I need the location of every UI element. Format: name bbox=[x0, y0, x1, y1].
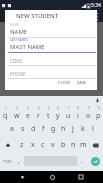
button[interactable]: l bbox=[88, 121, 98, 137]
staticText: e bbox=[26, 111, 30, 121]
button[interactable]: f bbox=[38, 121, 48, 137]
button[interactable]: 6 bbox=[53, 105, 63, 121]
button[interactable]: CODE bbox=[8, 53, 96, 66]
button[interactable]: 8 bbox=[73, 105, 83, 121]
staticText: s bbox=[21, 124, 25, 134]
button[interactable]: 9 bbox=[83, 105, 93, 121]
staticText: 9 bbox=[88, 106, 90, 110]
staticText: 2 bbox=[16, 106, 18, 110]
staticText: d bbox=[31, 124, 36, 134]
staticText: t bbox=[47, 111, 50, 121]
button[interactable]: c bbox=[38, 137, 48, 153]
staticText: h bbox=[61, 124, 66, 134]
staticText: f bbox=[42, 124, 45, 134]
button[interactable]: Hide keyboard bbox=[94, 97, 101, 104]
staticText: a bbox=[10, 124, 14, 134]
staticText: k bbox=[81, 124, 85, 134]
staticText: 8 bbox=[77, 106, 79, 110]
staticText: 1 bbox=[5, 106, 7, 110]
staticText: 4 bbox=[38, 106, 40, 110]
button[interactable]: . bbox=[77, 153, 87, 169]
staticText: i bbox=[77, 111, 79, 121]
staticText: , bbox=[18, 156, 20, 166]
button[interactable]: More options bbox=[94, 11, 101, 21]
staticText: NEW STUDENT bbox=[16, 12, 59, 20]
staticText: . bbox=[81, 156, 83, 166]
button[interactable]: Back bbox=[17, 172, 27, 182]
button[interactable]: 0 bbox=[93, 105, 103, 121]
staticText: 6 bbox=[57, 106, 59, 110]
staticText: 0 bbox=[98, 106, 100, 110]
staticText: j bbox=[72, 124, 74, 134]
button[interactable]: CLOSE bbox=[57, 79, 72, 86]
staticText: SAVE bbox=[77, 80, 87, 85]
staticText: PHONE bbox=[10, 71, 26, 77]
staticText: q bbox=[3, 111, 8, 121]
button[interactable]: Shift bbox=[0, 137, 16, 153]
staticText: LAST NAMES bbox=[10, 38, 28, 42]
staticText: g bbox=[51, 124, 56, 134]
button[interactable]: 2 bbox=[11, 105, 22, 121]
staticText: x bbox=[31, 140, 35, 150]
button[interactable]: NAME bbox=[8, 23, 96, 38]
staticText: m bbox=[80, 140, 87, 150]
staticText: CODE bbox=[10, 58, 23, 64]
staticText: y bbox=[56, 111, 60, 121]
button[interactable]: 7 bbox=[63, 105, 73, 121]
button[interactable]: , bbox=[14, 153, 24, 169]
staticText: 5 bbox=[48, 106, 50, 110]
staticText: z bbox=[20, 140, 24, 150]
button[interactable]: z bbox=[16, 137, 27, 153]
staticText: MAST NAME bbox=[10, 43, 45, 51]
button[interactable]: Backspace bbox=[88, 137, 103, 153]
button[interactable]: v bbox=[48, 137, 58, 153]
button[interactable]: j bbox=[68, 121, 78, 137]
button[interactable]: PHONE bbox=[8, 66, 96, 79]
button[interactable]: b bbox=[58, 137, 68, 153]
staticText: u bbox=[66, 111, 71, 121]
button[interactable]: Recents bbox=[76, 172, 86, 182]
button[interactable]: Enter bbox=[91, 157, 100, 166]
button[interactable]: 4 bbox=[33, 105, 43, 121]
staticText: CLOSE bbox=[58, 80, 71, 85]
staticText: n bbox=[71, 140, 76, 150]
button[interactable]: n bbox=[68, 137, 78, 153]
staticText: b bbox=[61, 140, 66, 150]
button[interactable]: x bbox=[27, 137, 38, 153]
button[interactable]: m bbox=[78, 137, 88, 153]
button[interactable]: a bbox=[6, 121, 17, 137]
button[interactable]: 5 bbox=[43, 105, 53, 121]
button[interactable]: SAVE bbox=[76, 79, 88, 86]
button[interactable]: s bbox=[17, 121, 28, 137]
staticText: o bbox=[86, 111, 91, 121]
staticText: NAME bbox=[10, 28, 28, 36]
staticText: c bbox=[41, 140, 45, 150]
button[interactable]: g bbox=[48, 121, 58, 137]
staticText: v bbox=[51, 140, 55, 150]
staticText: w bbox=[14, 111, 20, 121]
button[interactable]: 3 bbox=[22, 105, 33, 121]
button[interactable]: d bbox=[28, 121, 38, 137]
staticText: 5:34 bbox=[91, 2, 101, 9]
button[interactable]: Home bbox=[47, 172, 57, 182]
button[interactable]: ?123 bbox=[0, 153, 14, 169]
staticText: 3 bbox=[27, 106, 29, 110]
staticText: NAME bbox=[10, 23, 19, 27]
button[interactable]: LAST NAMES bbox=[8, 38, 96, 53]
staticText: ?123 bbox=[3, 159, 12, 164]
staticText: l bbox=[92, 124, 94, 134]
staticText: r bbox=[37, 111, 40, 121]
staticText: 7 bbox=[68, 106, 70, 110]
staticText: p bbox=[96, 111, 101, 121]
button[interactable]: h bbox=[58, 121, 68, 137]
button[interactable]: k bbox=[78, 121, 88, 137]
button[interactable]: 1 bbox=[0, 105, 11, 121]
